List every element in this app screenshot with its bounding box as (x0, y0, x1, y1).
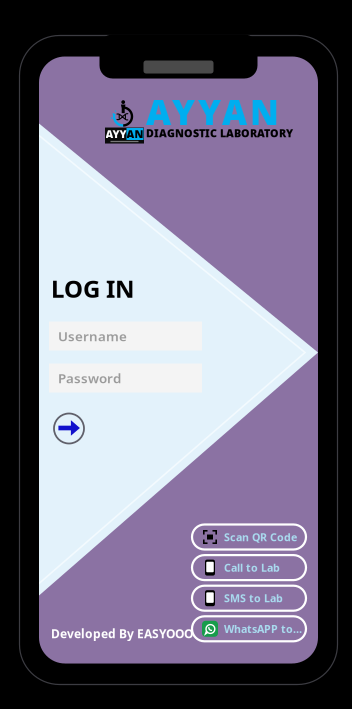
button[interactable]: Username (49, 321, 202, 350)
staticText: AN (126, 127, 143, 141)
staticText: Username (58, 327, 127, 345)
button[interactable]: Sign in (52, 411, 86, 445)
staticText: Password (58, 369, 121, 387)
button[interactable]: Call to Lab (192, 555, 306, 580)
staticText: LOG IN (51, 273, 135, 304)
button[interactable]: SMS to Lab (192, 586, 306, 611)
staticText: SMS to Lab (224, 591, 283, 605)
staticText: WhatsAPP to Lab (224, 622, 304, 636)
button[interactable]: Password (49, 363, 202, 392)
staticText: Call to Lab (224, 560, 280, 575)
staticText: DIAGNOSTIC LABORATORY (146, 126, 293, 140)
staticText: AYY (105, 127, 126, 141)
button[interactable]: Scan QR Code (192, 524, 306, 549)
staticText: Scan QR Code (224, 530, 297, 544)
button[interactable]: WhatsAPP to Lab (192, 616, 306, 641)
staticText: AYYAN (146, 88, 279, 134)
staticText: Developed By EASYOOO (51, 626, 193, 641)
